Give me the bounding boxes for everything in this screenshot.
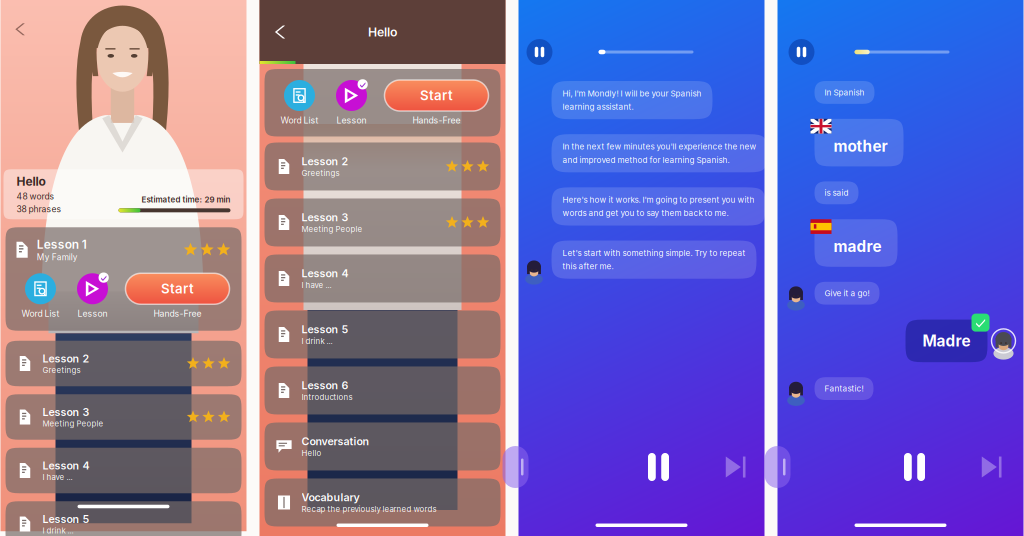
staticText: madre xyxy=(833,237,881,256)
button[interactable]: Pause xyxy=(526,39,552,65)
staticText: Greetings xyxy=(42,365,80,375)
staticText: Fantastic! xyxy=(824,384,863,393)
staticText: 38 phrases xyxy=(16,204,61,214)
staticText: Here's how it works. I'm going to presen… xyxy=(562,195,754,205)
staticText: Start xyxy=(161,281,194,297)
staticText: Introductions xyxy=(301,392,352,402)
button[interactable]: Pause xyxy=(788,39,814,65)
staticText: Let's start with something simple. Try t… xyxy=(562,248,745,258)
button[interactable]: Lesson 3 xyxy=(264,198,500,246)
button[interactable]: Vocabulary xyxy=(264,478,500,526)
staticText: Lesson 5 xyxy=(42,512,89,525)
button[interactable]: Pause xyxy=(897,450,931,484)
button[interactable]: Lesson 2 xyxy=(5,341,241,386)
staticText: 48 words xyxy=(16,191,54,201)
staticText: Lesson 2 xyxy=(42,352,89,365)
staticText: Vocabulary xyxy=(301,491,359,504)
staticText: My Family xyxy=(37,252,78,262)
button[interactable]: Word List xyxy=(21,273,59,319)
staticText: In Spanish xyxy=(824,87,864,97)
staticText: Lesson 4 xyxy=(301,267,348,280)
staticText: Start xyxy=(420,87,453,103)
staticText: Word List xyxy=(21,308,59,319)
button[interactable]: Lesson 3 xyxy=(5,394,241,440)
button[interactable]: Next xyxy=(975,450,1009,484)
button[interactable]: Pause xyxy=(641,450,675,484)
staticText: Lesson 3 xyxy=(301,211,348,224)
staticText: Hello xyxy=(301,448,321,458)
button[interactable]: Previous xyxy=(515,446,541,488)
button[interactable]: Lesson 2 xyxy=(264,142,500,190)
staticText: Meeting People xyxy=(42,419,103,428)
staticText: Lesson 3 xyxy=(42,405,89,418)
button[interactable]: Next xyxy=(719,450,753,484)
staticText: Hello xyxy=(16,174,45,189)
button[interactable]: Back xyxy=(9,17,33,41)
staticText: Hi, I'm Mondly! I will be your Spanish xyxy=(562,88,701,98)
button[interactable]: Start xyxy=(125,273,229,319)
staticText: Madre xyxy=(922,332,970,350)
staticText: Greetings xyxy=(301,168,339,178)
staticText: I have ... xyxy=(301,280,331,290)
staticText: Lesson 5 xyxy=(301,323,348,336)
button[interactable]: Back xyxy=(268,19,294,45)
button[interactable]: Lesson xyxy=(336,80,367,125)
staticText: Hands-Free xyxy=(412,115,460,125)
staticText: Lesson 6 xyxy=(301,379,348,392)
staticText: Conversation xyxy=(301,435,369,448)
button[interactable]: Previous xyxy=(777,446,803,488)
staticText: Lesson 2 xyxy=(301,155,348,168)
staticText: Hands-Free xyxy=(153,308,201,319)
button[interactable]: Lesson 6 xyxy=(264,366,500,414)
button[interactable]: Conversation xyxy=(264,422,500,470)
staticText: learning assistant. xyxy=(562,102,633,112)
staticText: Lesson xyxy=(77,308,107,319)
staticText: and improved method for learning Spanish… xyxy=(562,155,729,165)
button[interactable]: Lesson 4 xyxy=(5,448,241,493)
staticText: I have ... xyxy=(42,472,72,482)
button[interactable]: Lesson 5 xyxy=(264,310,500,358)
staticText: is said xyxy=(824,188,848,198)
button[interactable]: Lesson 5 xyxy=(5,501,241,536)
staticText: I drink ... xyxy=(301,336,332,346)
staticText: Lesson xyxy=(336,115,366,125)
staticText: Recap the previously learned words xyxy=(301,504,436,514)
staticText: Lesson 1 xyxy=(37,237,87,252)
staticText: mother xyxy=(833,137,887,155)
staticText: Give it a go! xyxy=(824,288,869,298)
staticText: Lesson 4 xyxy=(42,459,89,472)
staticText: Estimated time: 29 min xyxy=(141,195,230,204)
staticText: Word List xyxy=(280,115,318,125)
staticText: Hello xyxy=(368,25,397,39)
staticText: words and get you to say them back to me… xyxy=(562,208,728,218)
staticText: In the next few minutes you'll experienc… xyxy=(562,142,756,151)
button[interactable]: Word List xyxy=(280,80,318,125)
button[interactable]: Lesson 4 xyxy=(264,254,500,302)
button[interactable]: Start xyxy=(384,80,488,125)
staticText: this after me. xyxy=(562,261,613,271)
staticText: I drink ... xyxy=(42,526,73,535)
button[interactable]: Lesson xyxy=(77,273,108,319)
staticText: Meeting People xyxy=(301,224,362,234)
